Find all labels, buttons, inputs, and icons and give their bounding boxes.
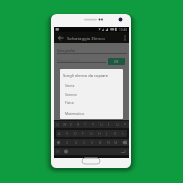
staticText: D <box>74 131 77 136</box>
button[interactable]: M <box>112 139 120 146</box>
staticText: X <box>75 140 78 145</box>
button[interactable]: A <box>56 130 63 137</box>
staticText: N <box>107 140 110 145</box>
button[interactable]: O <box>113 121 121 128</box>
button[interactable]: E <box>68 121 75 128</box>
staticText: A <box>58 131 61 136</box>
button[interactable]: K <box>111 130 119 137</box>
button[interactable] <box>120 139 129 146</box>
staticText: P <box>124 122 127 127</box>
button[interactable] <box>62 148 70 155</box>
button[interactable]: U <box>97 121 105 128</box>
button[interactable]: G <box>87 130 95 137</box>
staticText: G <box>90 131 93 136</box>
button[interactable]: H <box>95 130 103 137</box>
staticText: Y <box>92 122 95 127</box>
button[interactable] <box>117 148 129 155</box>
button[interactable]: !#1 <box>54 148 62 155</box>
staticText: F <box>82 131 84 136</box>
staticText: O <box>116 122 119 127</box>
staticText: J <box>106 131 108 136</box>
staticText: E <box>70 122 73 127</box>
button[interactable]: F <box>79 130 87 137</box>
staticText: I <box>108 122 110 127</box>
staticText: K <box>114 131 117 136</box>
button[interactable]: J <box>103 130 111 137</box>
staticText: Scegli elenco da copiare <box>63 73 108 78</box>
button[interactable]: L <box>119 130 127 137</box>
button[interactable]: Back <box>56 33 65 42</box>
staticText: Fisica <box>65 100 74 105</box>
button[interactable]: C <box>80 139 88 146</box>
staticText: R <box>77 122 80 127</box>
staticText: 10:40 <box>119 28 128 32</box>
button[interactable]: Storia <box>60 81 123 90</box>
staticText: Q <box>56 122 59 127</box>
staticText: Z <box>66 140 69 145</box>
staticText: Matematica <box>65 111 84 116</box>
button[interactable] <box>54 139 63 146</box>
button[interactable]: More options <box>121 34 129 42</box>
staticText: B <box>99 140 102 145</box>
staticText: !#1 <box>56 150 60 154</box>
staticText: M <box>114 140 118 145</box>
staticText: U <box>100 122 103 127</box>
button[interactable]: Fisica <box>60 98 123 107</box>
staticText: C <box>83 140 86 145</box>
button[interactable]: S <box>63 130 71 137</box>
button[interactable]: Z <box>63 139 72 146</box>
button[interactable]: Scienze <box>60 90 123 99</box>
button[interactable]: I <box>105 121 113 128</box>
button[interactable]: Y <box>89 121 97 128</box>
button[interactable]: Q <box>54 121 61 128</box>
button[interactable]: D <box>71 130 79 137</box>
staticText: Scienze <box>65 92 77 97</box>
staticText: L <box>122 131 124 136</box>
staticText: Nuovo elenco <box>57 58 79 63</box>
staticText: Salvataggio Elenco <box>67 35 105 41</box>
button[interactable]: W <box>61 121 68 128</box>
staticText: Storia <box>65 83 75 88</box>
button[interactable]: P <box>121 121 129 128</box>
button[interactable]: OK <box>108 58 125 65</box>
button[interactable]: R <box>75 121 82 128</box>
staticText: S <box>66 131 69 136</box>
staticText: W <box>63 122 67 127</box>
button[interactable]: V <box>88 139 96 146</box>
button[interactable]: Matematica <box>60 109 123 118</box>
staticText: OK <box>114 60 119 64</box>
button[interactable]: B <box>96 139 104 146</box>
staticText: Geografia <box>57 48 76 53</box>
button[interactable]: X <box>72 139 80 146</box>
staticText: V <box>91 140 94 145</box>
staticText: T <box>84 122 87 127</box>
button[interactable]: T <box>82 121 89 128</box>
staticText: H <box>98 131 101 136</box>
button[interactable]: N <box>104 139 112 146</box>
